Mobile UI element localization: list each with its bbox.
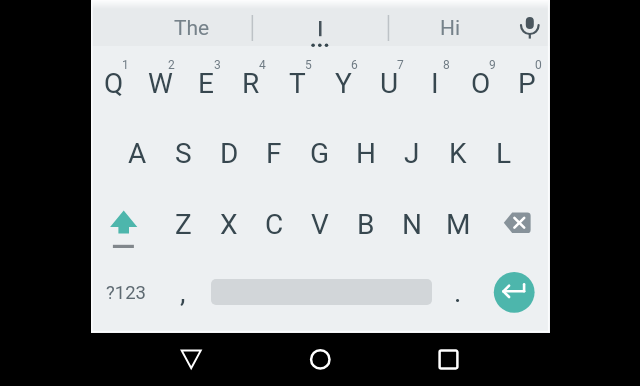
button[interactable]: J bbox=[390, 120, 434, 186]
button[interactable]: P bbox=[505, 50, 549, 116]
button[interactable] bbox=[265, 0, 375, 46]
staticText: I bbox=[431, 67, 439, 100]
button[interactable]: G bbox=[298, 120, 342, 186]
staticText: 1 bbox=[122, 58, 129, 72]
button[interactable]: M bbox=[436, 191, 480, 257]
button[interactable]: . bbox=[436, 260, 480, 324]
staticText: 0 bbox=[535, 58, 542, 72]
staticText: B bbox=[357, 208, 375, 241]
staticText: ?123 bbox=[106, 282, 146, 304]
button[interactable] bbox=[481, 188, 550, 260]
button[interactable]: S bbox=[161, 120, 205, 186]
staticText: 6 bbox=[351, 58, 358, 72]
button[interactable]: A bbox=[115, 120, 159, 186]
button[interactable]: O bbox=[459, 50, 503, 116]
staticText: K bbox=[449, 137, 467, 170]
button[interactable]: Q bbox=[92, 50, 136, 116]
button[interactable]: K bbox=[436, 120, 480, 186]
button[interactable]: The bbox=[137, 9, 247, 47]
staticText: R bbox=[242, 67, 260, 100]
button[interactable]: W bbox=[138, 50, 182, 116]
staticText: J bbox=[404, 137, 420, 170]
button[interactable]: Hi bbox=[405, 9, 495, 47]
staticText: Z bbox=[175, 208, 192, 241]
button[interactable]: V bbox=[298, 191, 342, 257]
button[interactable]: ?123 bbox=[95, 263, 157, 323]
staticText: , bbox=[180, 276, 186, 309]
button[interactable] bbox=[291, 332, 351, 386]
staticText: C bbox=[265, 208, 284, 241]
button[interactable] bbox=[481, 260, 550, 332]
staticText: . bbox=[454, 276, 462, 309]
staticText: 8 bbox=[443, 58, 450, 72]
staticText: G bbox=[310, 137, 330, 170]
staticText: A bbox=[128, 137, 147, 170]
button[interactable] bbox=[91, 188, 160, 260]
staticText: Hi bbox=[440, 16, 461, 41]
button[interactable] bbox=[417, 332, 477, 386]
staticText: Q bbox=[104, 67, 124, 100]
staticText: Y bbox=[335, 67, 352, 100]
button[interactable]: R bbox=[229, 50, 273, 116]
button[interactable]: , bbox=[161, 260, 205, 324]
button[interactable]: H bbox=[344, 120, 388, 186]
staticText: F bbox=[266, 137, 282, 170]
staticText: S bbox=[175, 137, 192, 170]
staticText: The bbox=[174, 16, 210, 41]
staticText: M bbox=[446, 208, 471, 241]
staticText: O bbox=[471, 67, 491, 100]
button[interactable]: Y bbox=[321, 50, 365, 116]
staticText: 2 bbox=[168, 58, 175, 72]
button[interactable]: Z bbox=[161, 191, 205, 257]
staticText: U bbox=[380, 67, 399, 100]
button[interactable]: E bbox=[184, 50, 228, 116]
button[interactable]: F bbox=[252, 120, 296, 186]
button[interactable]: D bbox=[207, 120, 251, 186]
staticText: 7 bbox=[397, 58, 404, 72]
staticText: 5 bbox=[305, 58, 312, 72]
button[interactable]: L bbox=[482, 120, 526, 186]
button[interactable]: N bbox=[390, 191, 434, 257]
button[interactable]: C bbox=[252, 191, 296, 257]
staticText: T bbox=[289, 67, 306, 100]
staticText: 4 bbox=[259, 58, 266, 72]
button[interactable]: U bbox=[367, 50, 411, 116]
staticText: V bbox=[311, 208, 329, 241]
staticText: 3 bbox=[214, 58, 221, 72]
staticText: E bbox=[198, 67, 214, 100]
button[interactable] bbox=[503, 0, 549, 46]
button[interactable] bbox=[161, 332, 221, 386]
staticText: L bbox=[496, 137, 512, 170]
staticText: P bbox=[518, 67, 536, 100]
staticText: D bbox=[220, 137, 239, 170]
staticText: W bbox=[148, 67, 173, 100]
button[interactable]: X bbox=[207, 191, 251, 257]
staticText: H bbox=[356, 137, 376, 170]
button[interactable]: T bbox=[275, 50, 319, 116]
staticText: 9 bbox=[489, 58, 496, 72]
button[interactable]: I bbox=[413, 50, 457, 116]
button[interactable]: B bbox=[344, 191, 388, 257]
staticText: N bbox=[402, 208, 422, 241]
staticText: X bbox=[220, 208, 238, 241]
